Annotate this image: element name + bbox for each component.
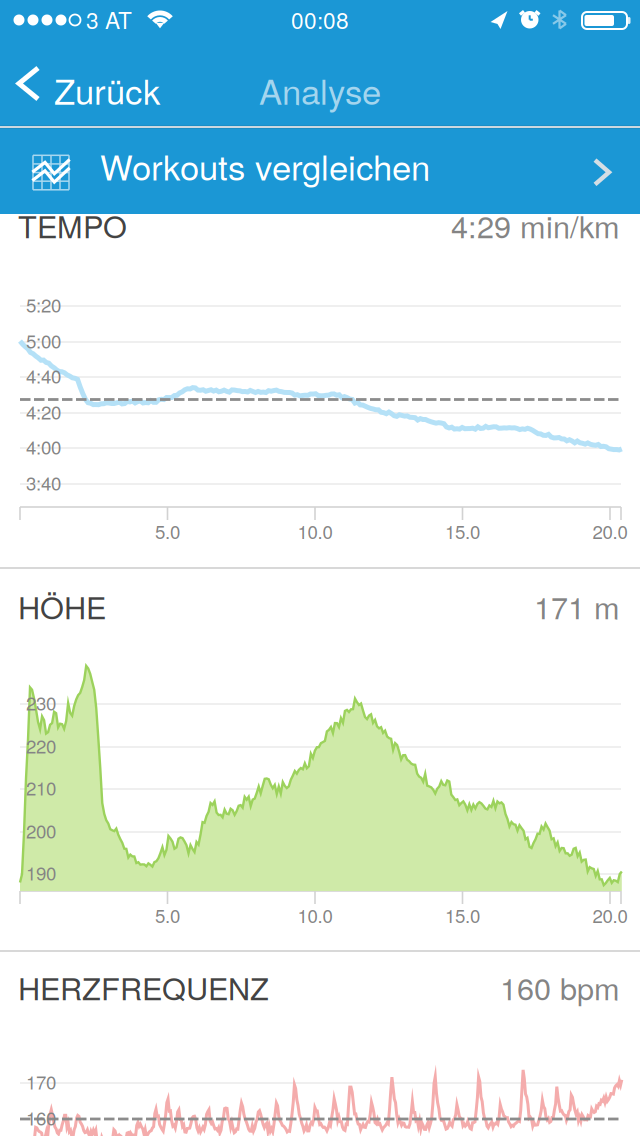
staticText: 200 [26,817,56,844]
staticText: 10.0 [297,901,332,928]
staticText: 00:08 [291,3,349,35]
staticText: 3 AT [86,3,132,35]
staticText: 15.0 [445,517,480,544]
staticText: 3:40 [26,469,61,496]
staticText: 4:29 min/km [451,203,620,247]
button[interactable]: Workouts vergleichen [0,128,640,214]
staticText: 5:20 [26,291,61,318]
staticText: 5.0 [155,517,180,544]
staticText: 160 [26,1104,56,1131]
staticText: 15.0 [445,901,480,928]
staticText: 4:40 [26,362,61,389]
staticText: TEMPO [18,203,127,247]
staticText: 210 [26,774,56,801]
staticText: 20.0 [592,517,627,544]
staticText: 171 m [534,584,620,628]
staticText: HERZFREQUENZ [18,965,269,1009]
staticText: HÖHE [18,584,106,628]
button[interactable]: Zurück [0,40,175,128]
staticText: Zurück [54,65,160,115]
staticText: Analyse [259,65,381,115]
staticText: 160 bpm [500,965,620,1009]
staticText: 190 [26,859,56,886]
staticText: 4:20 [26,398,61,425]
staticText: 230 [26,689,56,716]
staticText: 10.0 [297,517,332,544]
staticText: 4:00 [26,433,61,460]
staticText: Workouts vergleichen [100,141,430,190]
staticText: 5.0 [155,901,180,928]
staticText: 220 [26,732,56,759]
staticText: 20.0 [592,901,627,928]
staticText: 5:00 [26,327,61,354]
staticText: 170 [26,1068,56,1095]
